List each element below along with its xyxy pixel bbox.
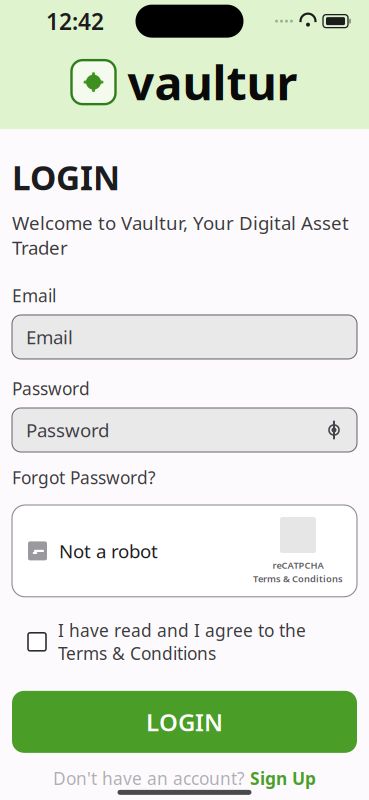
button[interactable]: Email [12,315,357,359]
button[interactable]: Forgot Password? [12,462,156,493]
staticText: Welcome to Vaultur, Your Digital Asset T… [12,210,349,260]
staticText: Email [12,284,56,307]
button[interactable]: Not a robot [12,505,357,597]
staticText: Forgot Password? [12,466,156,489]
staticText: Sign Up [250,767,316,790]
staticText: 12:42 [46,6,104,36]
staticText: I have read and I agree to the Terms & C… [58,619,306,665]
staticText: Password [26,418,109,442]
button[interactable]: Sign Up [250,767,316,790]
staticText: Not a robot [59,538,158,563]
staticText: Terms & Conditions [253,572,343,585]
button[interactable]: Password [12,408,357,452]
staticText: LOGIN [146,706,223,738]
button[interactable]: LOGIN [12,691,357,753]
staticText: Email [26,325,73,349]
staticText: vaultur [127,51,297,113]
staticText: Password [12,377,90,400]
staticText: LOGIN [12,155,120,199]
staticText: reCATPCHA [272,559,323,571]
staticText: Don't have an account? [53,767,250,790]
button[interactable]: I have read and I agree to the Terms & C… [12,615,357,669]
